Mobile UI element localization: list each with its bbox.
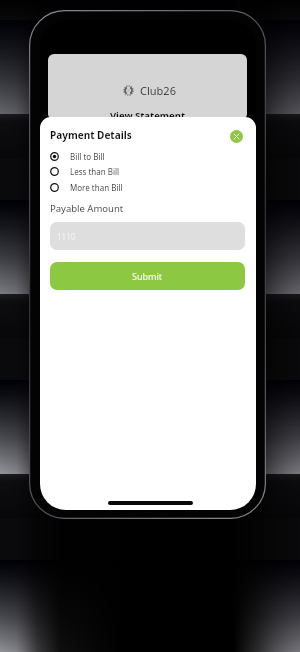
staticText: Club26 — [140, 83, 176, 98]
staticText: More than Bill — [70, 182, 123, 193]
staticText: Payment Details — [50, 128, 132, 142]
staticText: Less than Bill — [70, 166, 120, 177]
button[interactable]: 1110 — [50, 222, 245, 250]
button[interactable]: More than Bill — [50, 180, 245, 195]
button[interactable]: Close — [230, 130, 243, 143]
staticText: 1110 — [57, 231, 76, 242]
staticText: View Statement — [48, 109, 247, 120]
button[interactable]: Submit — [50, 262, 245, 290]
button[interactable]: Less than Bill — [50, 164, 245, 179]
staticText: Payable Amount — [50, 202, 124, 215]
staticText: Bill to Bill — [70, 151, 105, 162]
button[interactable]: Bill to Bill — [50, 149, 245, 164]
staticText: Submit — [132, 270, 163, 282]
